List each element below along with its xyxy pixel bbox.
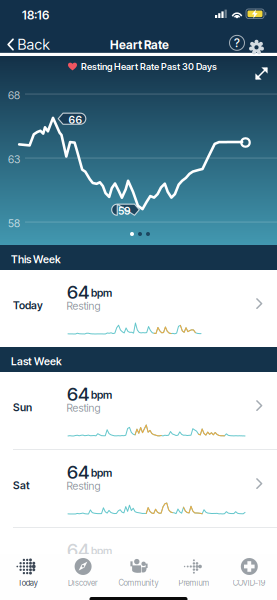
button[interactable]: COVID-19: [222, 556, 277, 588]
staticText: Resting: [66, 401, 100, 414]
button[interactable]: Expand chart: [250, 62, 273, 85]
staticText: Resting: [66, 479, 100, 492]
staticText: 64: [67, 383, 89, 405]
staticText: Today: [18, 578, 38, 587]
button[interactable]: Community: [111, 556, 166, 588]
staticText: Discover: [68, 578, 98, 587]
button[interactable]: Discover: [55, 556, 111, 588]
staticText: Heart Rate: [110, 38, 169, 52]
staticText: 18:16: [22, 8, 49, 22]
staticText: Community: [118, 578, 158, 587]
button[interactable]: Back: [0, 30, 55, 59]
staticText: Premium: [178, 578, 209, 587]
staticText: Last Week: [11, 355, 62, 368]
staticText: This Week: [11, 253, 61, 266]
staticText: Today: [13, 299, 43, 312]
staticText: 63: [8, 153, 20, 166]
staticText: bpm: [91, 466, 112, 479]
staticText: Fri: [13, 557, 25, 570]
staticText: Resting Heart Rate Past 30 Days: [81, 61, 217, 72]
staticText: 64: [67, 281, 89, 303]
button[interactable]: Premium: [166, 556, 222, 588]
staticText: ?: [234, 36, 240, 50]
button[interactable]: 64: [0, 450, 277, 527]
button[interactable]: Today: [0, 556, 55, 588]
button[interactable]: 64: [0, 270, 277, 347]
staticText: bpm: [91, 286, 112, 299]
staticText: 64: [67, 461, 89, 483]
staticText: 64: [67, 539, 89, 561]
staticText: Resting: [66, 299, 100, 312]
staticText: Resting: [66, 557, 100, 570]
staticText: 66: [68, 114, 82, 126]
staticText: 68: [8, 89, 20, 102]
button[interactable]: Settings: [245, 36, 268, 59]
button[interactable]: 64: [0, 528, 277, 600]
staticText: COVID-19: [233, 578, 266, 587]
staticText: Sat: [13, 479, 30, 492]
button[interactable]: Help: [226, 32, 248, 54]
staticText: 58: [8, 217, 20, 230]
staticText: bpm: [91, 388, 112, 401]
staticText: Sun: [13, 401, 32, 414]
button[interactable]: 64: [0, 372, 277, 449]
staticText: Back: [17, 36, 49, 53]
staticText: 59: [118, 205, 131, 217]
staticText: bpm: [91, 544, 112, 557]
